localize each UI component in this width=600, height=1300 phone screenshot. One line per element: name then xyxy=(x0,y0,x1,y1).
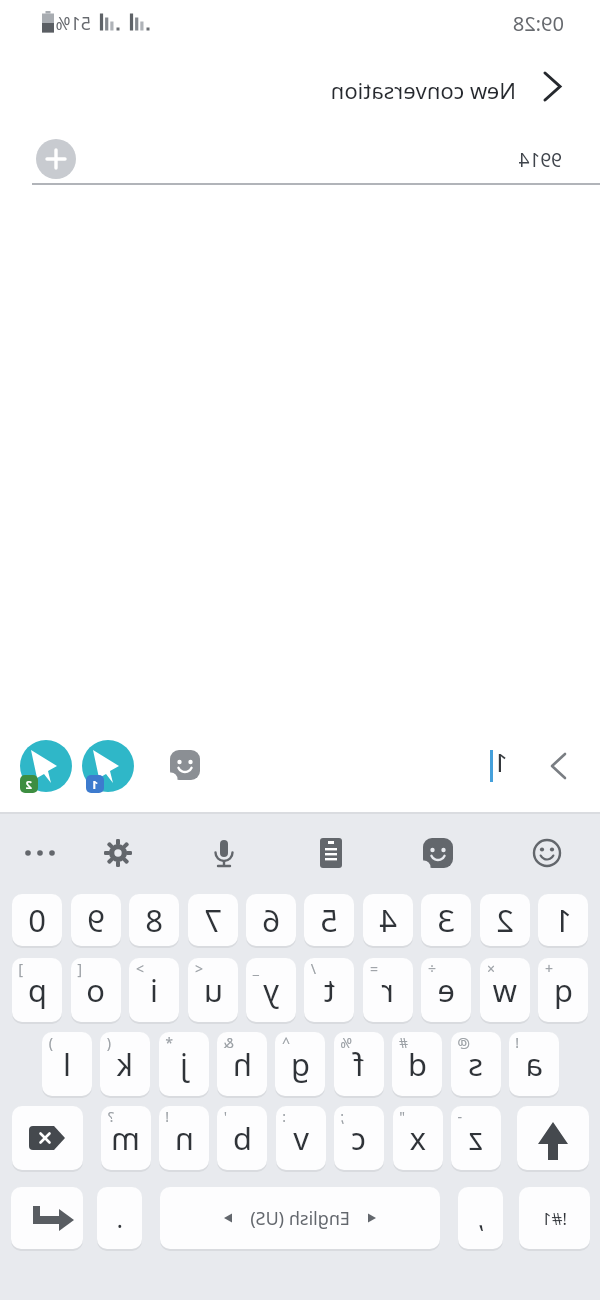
button[interactable]: # xyxy=(392,1032,442,1096)
button[interactable]: English (US) xyxy=(160,1187,440,1249)
button[interactable] xyxy=(526,62,574,110)
staticText: ) xyxy=(48,1033,53,1052)
button[interactable]: 9 xyxy=(71,894,121,946)
button[interactable] xyxy=(20,833,60,873)
button[interactable]: 5 xyxy=(304,894,354,946)
staticText: " xyxy=(399,1107,405,1126)
button[interactable] xyxy=(204,833,244,873)
staticText: !#1 xyxy=(541,1207,567,1230)
staticText: 6 xyxy=(262,899,280,941)
button[interactable] xyxy=(36,139,76,179)
button[interactable]: × xyxy=(480,958,530,1022)
staticText: e xyxy=(437,969,455,1011)
staticText: × xyxy=(486,959,495,978)
button[interactable]: & xyxy=(217,1032,267,1096)
button[interactable] xyxy=(517,1106,589,1170)
staticText: q xyxy=(553,969,573,1011)
staticText: l xyxy=(63,1043,71,1085)
staticText: h xyxy=(232,1043,252,1085)
staticText: ^ xyxy=(281,1033,290,1052)
button[interactable]: ] xyxy=(12,958,62,1022)
button[interactable]: 6 xyxy=(246,894,296,946)
staticText: b xyxy=(232,1117,252,1159)
button[interactable] xyxy=(98,833,138,873)
button[interactable] xyxy=(12,1106,83,1170)
staticText: 1 xyxy=(91,777,98,792)
staticText: t xyxy=(323,969,335,1011)
staticText: o xyxy=(86,969,105,1011)
button[interactable]: " xyxy=(393,1106,443,1170)
button[interactable]: _ xyxy=(246,958,296,1022)
button[interactable] xyxy=(11,1187,83,1249)
staticText: k xyxy=(116,1043,133,1085)
button[interactable]: ? xyxy=(101,1106,151,1170)
button[interactable] xyxy=(311,833,351,873)
button[interactable]: 2 xyxy=(480,894,530,946)
button[interactable]: < xyxy=(188,958,238,1022)
staticText: a xyxy=(525,1043,543,1085)
staticText: ' xyxy=(223,1107,227,1126)
button[interactable] xyxy=(527,833,567,873)
staticText: < xyxy=(194,959,203,978)
staticText: ÷ xyxy=(427,959,436,978)
button[interactable]: 1 xyxy=(538,894,588,946)
staticText: c xyxy=(351,1117,366,1159)
staticText: 1 xyxy=(554,899,572,941)
staticText: p xyxy=(27,969,47,1011)
staticText: z xyxy=(468,1117,483,1159)
button[interactable]: 0 xyxy=(12,894,62,946)
button[interactable]: 8 xyxy=(129,894,179,946)
button[interactable]: > xyxy=(129,958,179,1022)
button[interactable]: , xyxy=(458,1187,503,1249)
button[interactable]: 7 xyxy=(188,894,238,946)
button[interactable]: 3 xyxy=(421,894,471,946)
staticText: ? xyxy=(107,1107,114,1126)
staticText: 8 xyxy=(145,899,163,941)
staticText: f xyxy=(353,1043,364,1085)
button[interactable] xyxy=(418,833,458,873)
staticText: * xyxy=(165,1033,173,1052)
staticText: ! xyxy=(165,1107,169,1126)
staticText: 1 xyxy=(493,744,508,779)
staticText: = xyxy=(369,959,378,978)
button[interactable]: [ xyxy=(71,958,121,1022)
button[interactable]: % xyxy=(334,1032,384,1096)
staticText: : xyxy=(282,1107,286,1126)
staticText: 3 xyxy=(437,899,455,941)
staticText: > xyxy=(135,959,144,978)
button[interactable]: = xyxy=(363,958,413,1022)
staticText: v xyxy=(293,1117,309,1159)
staticText: ( xyxy=(106,1033,111,1052)
staticText: + xyxy=(544,959,553,978)
button[interactable]: 4 xyxy=(363,894,413,946)
staticText: 5 xyxy=(320,899,338,941)
button[interactable]: : xyxy=(276,1106,326,1170)
button[interactable]: + xyxy=(538,958,588,1022)
button[interactable] xyxy=(20,740,72,792)
button[interactable] xyxy=(536,748,572,784)
button[interactable] xyxy=(82,740,134,792)
staticText: 4 xyxy=(379,899,397,941)
staticText: English (US) xyxy=(250,1206,350,1231)
button[interactable]: - xyxy=(451,1106,501,1170)
button[interactable]: ÷ xyxy=(421,958,471,1022)
button[interactable]: / xyxy=(304,958,354,1022)
staticText: s xyxy=(468,1043,483,1085)
button[interactable]: ) xyxy=(42,1032,92,1096)
button[interactable]: ( xyxy=(100,1032,150,1096)
button[interactable] xyxy=(166,746,204,784)
button[interactable]: * xyxy=(159,1032,209,1096)
button[interactable]: ; xyxy=(334,1106,384,1170)
button[interactable]: !#1 xyxy=(519,1187,590,1249)
button[interactable]: ^ xyxy=(275,1032,325,1096)
button[interactable]: ' xyxy=(217,1106,267,1170)
staticText: 9914 xyxy=(518,147,562,173)
button[interactable]: ! xyxy=(159,1106,209,1170)
staticText: n xyxy=(174,1117,194,1159)
staticText: y xyxy=(263,969,279,1011)
staticText: m xyxy=(111,1117,140,1159)
button[interactable]: . xyxy=(97,1187,142,1249)
button[interactable]: @ xyxy=(451,1032,501,1096)
staticText: % xyxy=(340,1033,352,1052)
button[interactable]: ! xyxy=(509,1032,559,1096)
